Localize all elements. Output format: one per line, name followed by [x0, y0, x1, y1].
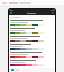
button[interactable]	[9, 15, 55, 19]
button[interactable]: Navigation menu	[10, 12, 12, 14]
button[interactable]: Palettes	[11, 69, 14, 71]
button[interactable]	[9, 19, 55, 27]
button[interactable]	[9, 59, 55, 67]
button[interactable]: Search	[52, 12, 54, 14]
button[interactable]	[9, 51, 55, 59]
button[interactable]	[9, 35, 55, 43]
button[interactable]	[9, 43, 55, 51]
button[interactable]	[9, 27, 55, 35]
